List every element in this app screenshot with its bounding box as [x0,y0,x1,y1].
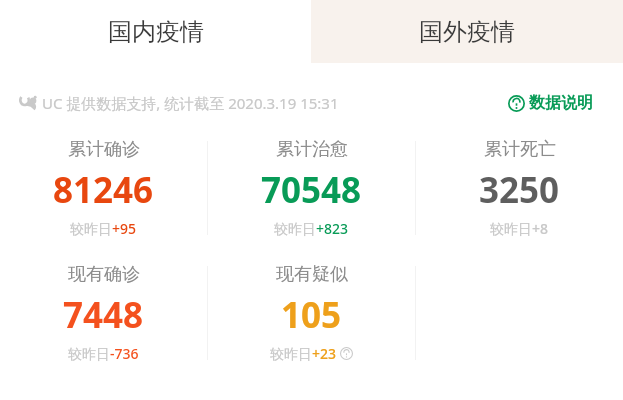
staticText: 较昨日-736 [68,344,139,363]
staticText: 国外疫情 [419,17,515,47]
button[interactable]: 国内疫情 [0,0,311,63]
staticText: 累计确诊 [68,138,140,161]
other: UC browser logo [20,94,39,113]
staticText: 较昨日+23 [270,344,337,363]
staticText: 105 [281,291,342,339]
button[interactable]: 现有疑似 [208,258,415,368]
staticText: 累计治愈 [276,138,348,161]
staticText: 81246 [53,166,154,214]
staticText: 较昨日+823 [274,219,349,238]
staticText: 7448 [63,291,144,339]
staticText: 较昨日+95 [70,219,137,238]
staticText: 数据说明 [529,93,593,113]
button[interactable]: 累计死亡 [416,133,623,243]
staticText: 现有确诊 [68,263,140,286]
staticText: 累计死亡 [484,138,556,161]
button[interactable]: 累计确诊 [0,133,207,243]
staticText: UC 提供数据支持, 统计截至 2020.3.19 15:31 [42,93,339,113]
button[interactable]: 现有确诊 [0,258,207,368]
staticText: 3250 [479,166,560,214]
staticText: 70548 [261,166,362,214]
button[interactable]: 累计治愈 [208,133,415,243]
staticText: 较昨日+8 [490,219,549,238]
button[interactable]: 国外疫情 [311,0,623,63]
button[interactable]: 数据说明 [508,93,593,113]
staticText: 现有疑似 [276,263,348,286]
staticText: 国内疫情 [108,17,204,47]
